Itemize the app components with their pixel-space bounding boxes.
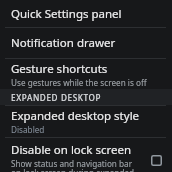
- staticText: Gesture shortcuts: [11, 61, 108, 77]
- staticText: Use gestures while the screen is off: [11, 77, 147, 88]
- staticText: Notification drawer: [11, 35, 116, 51]
- staticText: Quick Settings panel: [11, 6, 122, 22]
- staticText: Disabled: [11, 124, 45, 135]
- staticText: Expanded desktop style: [11, 108, 140, 124]
- button[interactable]: Gesture shortcuts: [0, 59, 172, 89]
- staticText: EXPANDED DESKTOP: [11, 92, 102, 103]
- staticText: Disable on lock screen: [11, 142, 132, 158]
- button[interactable]: Disable on lock screen toggle: [144, 148, 168, 172]
- staticText: Show status and navigation bar on lock s…: [11, 158, 142, 172]
- button[interactable]: Notification drawer: [0, 28, 172, 58]
- button[interactable]: Expanded desktop style: [0, 106, 172, 137]
- button[interactable]: Quick Settings panel: [0, 0, 172, 27]
- button[interactable]: Disable on lock screen: [0, 138, 172, 172]
